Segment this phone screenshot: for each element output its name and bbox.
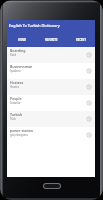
other: Favorite	[86, 132, 92, 138]
staticText: güç istasyonu	[10, 133, 29, 137]
button[interactable]: power station	[7, 127, 95, 143]
staticText: RECENT	[76, 38, 86, 42]
button[interactable]: Hostess	[7, 79, 95, 95]
other: Favorite	[86, 84, 92, 90]
other: Favorite	[86, 68, 92, 74]
staticText: Turkish	[10, 112, 23, 117]
staticText: English To Turkish Dictionary	[9, 23, 60, 28]
staticText: İnsanlar	[10, 101, 21, 105]
other: Favorite	[86, 116, 92, 122]
other: Home	[44, 184, 60, 188]
button[interactable]: Businessman	[7, 63, 95, 79]
staticText: Boarding	[10, 48, 26, 53]
staticText: Yatılı	[10, 53, 17, 57]
staticText: power station	[10, 128, 34, 133]
staticText: Hostes	[10, 85, 20, 89]
staticText: FAVORITE	[45, 38, 58, 42]
button[interactable]: People	[7, 95, 95, 111]
staticText: İşadamı	[10, 69, 21, 73]
other: Favorite	[86, 52, 92, 58]
staticText: Hostess	[10, 80, 24, 85]
button[interactable]: HOME	[7, 35, 37, 47]
staticText: People	[10, 96, 22, 101]
button[interactable]: RECENT	[66, 35, 95, 47]
button[interactable]: FAVORITE	[37, 35, 66, 47]
button[interactable]: Boarding	[7, 47, 95, 63]
staticText: Businessman	[10, 64, 33, 69]
staticText: HOME	[18, 38, 26, 42]
staticText: Türk	[10, 117, 16, 121]
button[interactable]: Turkish	[7, 111, 95, 127]
other: Favorite	[86, 100, 92, 106]
